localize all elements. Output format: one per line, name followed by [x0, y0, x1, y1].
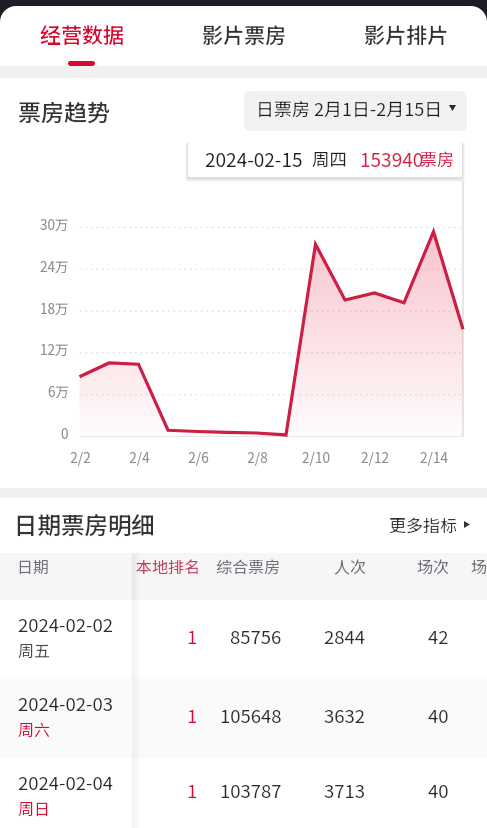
button[interactable]: 2024-02-04 [0, 758, 487, 828]
staticText: 2/2 [70, 447, 91, 467]
staticText: 2/4 [129, 447, 150, 467]
staticText: 105648 [220, 702, 282, 729]
staticText: 1 [187, 702, 198, 729]
staticText: 42 [428, 623, 449, 650]
staticText: 3713 [324, 777, 366, 804]
staticText: 103787 [220, 777, 282, 804]
staticText: 影片票房 [202, 19, 286, 49]
staticText: 3632 [324, 702, 366, 729]
staticText: 2844 [324, 623, 366, 650]
staticText: 日期票房明细 [14, 507, 155, 541]
staticText: 40 [428, 702, 449, 729]
button[interactable]: 影片票房 [163, 6, 325, 66]
staticText: 40 [428, 777, 449, 804]
staticText: 场次 [417, 554, 450, 577]
button[interactable]: 经营数据 [0, 6, 163, 66]
button[interactable]: 更多指标 [379, 506, 480, 543]
staticText: 153940 [360, 145, 424, 173]
staticText: 日票房 2月1日-2月15日 [256, 95, 443, 121]
staticText: 周五 [18, 638, 51, 661]
staticText: 2/12 [361, 447, 389, 467]
button[interactable]: 日票房 2月1日-2月15日 [244, 91, 467, 131]
staticText: 影片排片 [364, 19, 448, 49]
button[interactable]: 影片排片 [325, 6, 487, 66]
staticText: 2/10 [302, 447, 330, 467]
staticText: 0 [61, 423, 69, 443]
staticText: 2/6 [188, 447, 209, 467]
staticText: 1 [187, 777, 198, 804]
staticText: 2024-02-15 [205, 145, 303, 173]
staticText: 周日 [18, 796, 51, 819]
staticText: 综合票房 [216, 554, 281, 577]
staticText: 票房 [420, 146, 454, 171]
staticText: 24万 [40, 256, 69, 276]
button[interactable]: 2024-02-02 [0, 600, 487, 679]
staticText: 场 [471, 554, 487, 577]
staticText: 票房趋势 [18, 94, 110, 127]
staticText: 本地排名 [136, 554, 201, 577]
staticText: 2024-02-04 [18, 769, 113, 796]
staticText: 2/14 [420, 447, 448, 467]
staticText: 85756 [230, 623, 282, 650]
staticText: 2024-02-03 [18, 690, 113, 717]
staticText: 更多指标 [389, 512, 457, 537]
staticText: 周四 [312, 146, 347, 171]
staticText: 2024-02-02 [18, 611, 113, 638]
staticText: 18万 [40, 298, 69, 318]
button[interactable]: 2024-02-03 [0, 679, 487, 758]
staticText: 12万 [40, 339, 69, 359]
staticText: 周六 [18, 717, 51, 740]
staticText: 日期 [17, 554, 50, 577]
staticText: 经营数据 [40, 19, 124, 49]
staticText: 人次 [334, 554, 367, 577]
staticText: 6万 [48, 381, 69, 401]
staticText: 1 [187, 623, 198, 650]
staticText: 30万 [40, 214, 69, 234]
staticText: 2/8 [247, 447, 268, 467]
